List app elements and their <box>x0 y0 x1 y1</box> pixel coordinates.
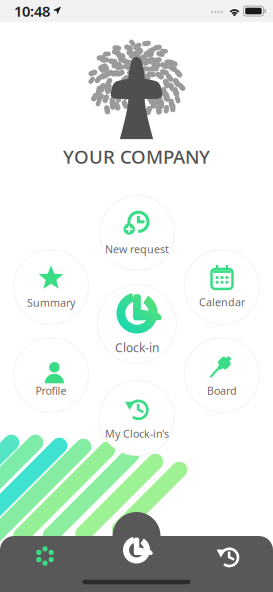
button[interactable]: Dashboard <box>17 535 73 577</box>
button[interactable]: Clock-in <box>97 284 177 364</box>
staticText: Summary <box>27 295 75 310</box>
staticText: Calendar <box>199 295 245 309</box>
button[interactable]: Calendar <box>184 249 260 325</box>
staticText: Board <box>207 383 237 398</box>
button[interactable]: Profile <box>13 337 89 413</box>
button[interactable]: Board <box>184 337 260 413</box>
staticText: Profile <box>35 383 66 398</box>
staticText: YOUR COMPANY <box>63 144 210 169</box>
button[interactable]: My Clock-in's <box>99 380 175 456</box>
staticText: My Clock-in's <box>105 426 169 441</box>
staticText: Clock-in <box>115 339 159 355</box>
button[interactable]: History <box>200 535 256 577</box>
button[interactable]: New request <box>99 195 175 271</box>
staticText: New request <box>105 242 169 256</box>
button[interactable]: Summary <box>13 249 89 325</box>
staticText: 10:48 <box>14 1 50 21</box>
button[interactable]: Clock in <box>108 527 164 573</box>
